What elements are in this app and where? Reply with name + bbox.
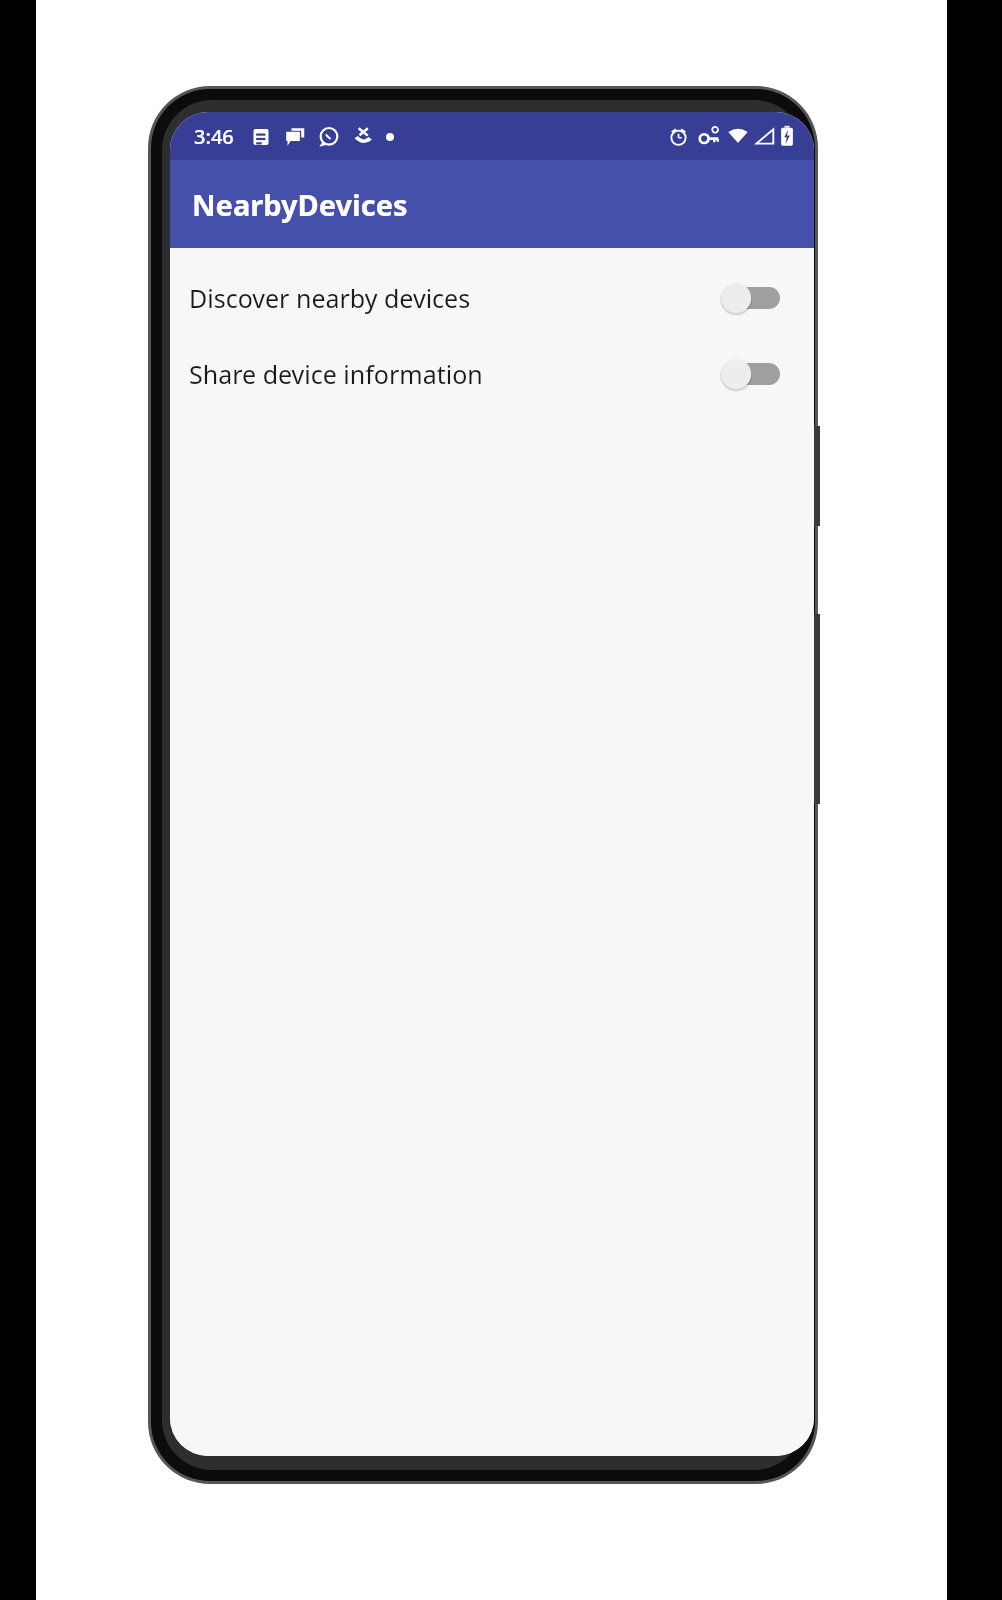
staticText: Discover nearby devices (189, 281, 471, 315)
button[interactable]: Toggle (720, 352, 780, 396)
staticText: NearbyDevices (192, 185, 408, 224)
staticText: 3:46 (194, 123, 234, 150)
button[interactable]: Share device information (170, 336, 814, 412)
button[interactable]: Discover nearby devices (170, 260, 814, 336)
button[interactable]: Toggle (720, 276, 780, 320)
staticText: Share device information (189, 357, 483, 391)
